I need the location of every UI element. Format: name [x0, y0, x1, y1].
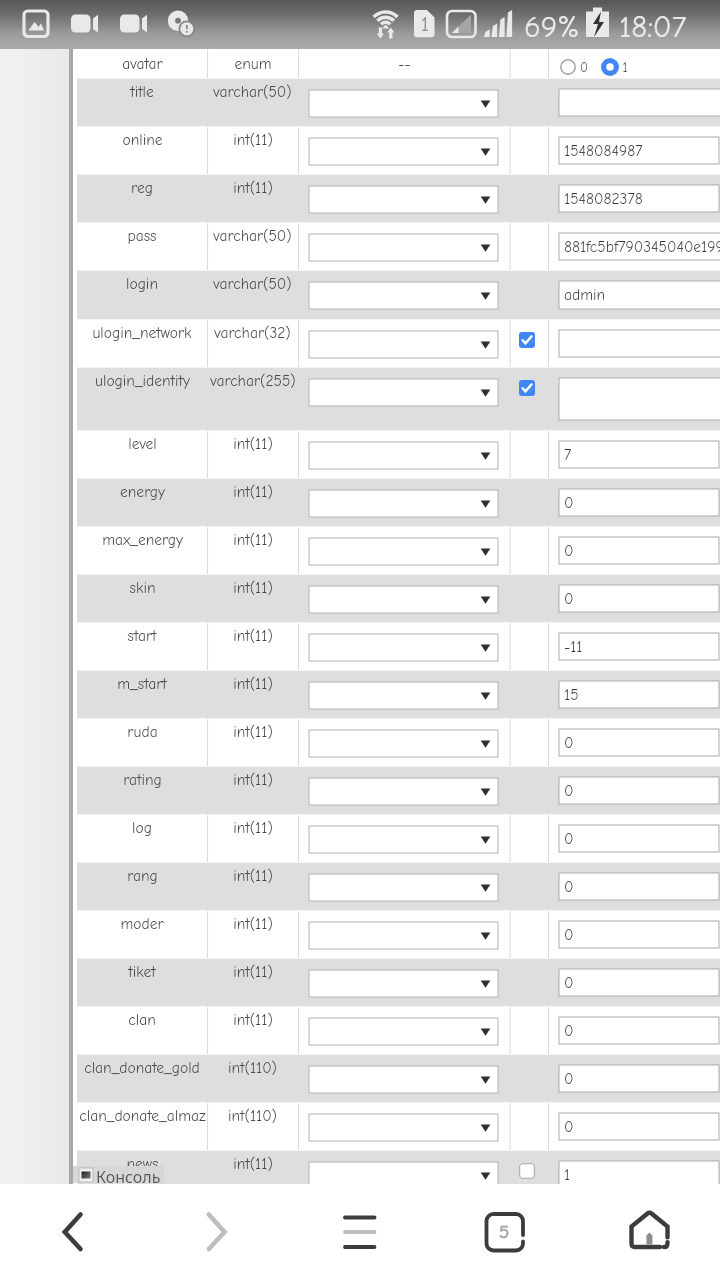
button[interactable]: Value [559, 825, 719, 852]
staticText: 18:07 [619, 9, 687, 45]
staticText: reg [131, 179, 153, 197]
button[interactable]: Value [559, 489, 719, 516]
staticText: 0 [564, 1118, 574, 1136]
staticText: int(110) [228, 1107, 277, 1125]
staticText: 0 [564, 494, 574, 512]
staticText: int(11) [233, 915, 273, 933]
staticText: admin [564, 286, 606, 304]
staticText: skin [129, 579, 156, 597]
button[interactable]: Select function [309, 922, 498, 949]
staticText: clan [128, 1011, 156, 1029]
button[interactable]: Back [36, 1196, 108, 1268]
staticText: varchar(32) [214, 324, 291, 342]
button[interactable]: Set NULL [519, 380, 535, 396]
staticText: rang [127, 867, 158, 885]
button[interactable]: Value [559, 729, 719, 756]
button[interactable]: Select function [309, 90, 498, 117]
button[interactable]: Value [559, 633, 719, 660]
staticText: start [127, 627, 157, 645]
staticText: int(110) [228, 1059, 277, 1077]
staticText: 0 [564, 926, 574, 944]
staticText: 1 [622, 60, 628, 75]
button[interactable]: Value [559, 1065, 719, 1092]
button[interactable]: Select function [309, 234, 498, 261]
button[interactable]: Value [559, 441, 719, 468]
button[interactable]: Value [559, 185, 719, 212]
staticText: 0 [564, 830, 574, 848]
button[interactable]: Value [559, 281, 720, 309]
staticText: 0 [564, 1022, 574, 1040]
button[interactable]: Value [559, 378, 720, 420]
button[interactable]: Value [559, 1161, 719, 1188]
staticText: -11 [564, 638, 583, 656]
staticText: int(11) [233, 483, 273, 501]
button[interactable]: Value [559, 681, 719, 708]
button[interactable]: Forward [180, 1196, 252, 1268]
button[interactable]: Select function [309, 730, 498, 757]
staticText: 0 [564, 590, 574, 608]
staticText: 0 [580, 60, 588, 75]
staticText: 69% [524, 9, 580, 45]
staticText: pass [127, 227, 157, 245]
staticText: varchar(50) [213, 227, 292, 245]
button[interactable]: Value [559, 330, 720, 357]
staticText: 0 [564, 878, 574, 896]
button[interactable]: Value [559, 1113, 719, 1140]
button[interactable]: Консоль [73, 1166, 164, 1183]
staticText: tiket [128, 963, 156, 981]
button[interactable]: Select function [309, 379, 498, 406]
button[interactable]: Tabs [468, 1196, 540, 1268]
button[interactable]: Value [559, 233, 720, 260]
button[interactable]: Select function [309, 682, 498, 709]
button[interactable]: Home [613, 1196, 685, 1268]
staticText: 0 [564, 542, 574, 560]
staticText: ulogin_identity [95, 372, 190, 390]
button[interactable]: Value [559, 873, 719, 900]
staticText: 15 [564, 686, 579, 704]
staticText: Консоль [96, 1166, 161, 1183]
staticText: m_start [117, 675, 167, 693]
button[interactable]: Value [559, 137, 719, 164]
staticText: 0 [564, 734, 574, 752]
button[interactable]: Value [559, 969, 719, 996]
button[interactable]: Value [559, 1017, 719, 1044]
button[interactable]: Select function [309, 634, 498, 661]
staticText: int(11) [233, 1011, 273, 1029]
button[interactable]: Select function [309, 442, 498, 469]
staticText: ruda [127, 723, 158, 741]
button[interactable]: Select function [309, 1066, 498, 1093]
button[interactable]: Select function [309, 778, 498, 805]
staticText: login [126, 275, 158, 293]
button[interactable]: Select function [309, 186, 498, 213]
button[interactable]: Select function [309, 538, 498, 565]
staticText: ulogin_network [92, 324, 192, 342]
staticText: int(11) [233, 723, 273, 741]
staticText: 1 [421, 13, 429, 36]
button[interactable]: Select function [309, 331, 498, 358]
button[interactable]: Select function [309, 1018, 498, 1045]
staticText: avatar [122, 55, 163, 73]
button[interactable]: Option 0 [556, 55, 580, 79]
button[interactable]: Select function [309, 826, 498, 853]
button[interactable]: Select function [309, 1114, 498, 1141]
staticText: clan_donate_almaz [79, 1107, 206, 1125]
button[interactable]: Value [559, 777, 719, 804]
button[interactable]: Select function [309, 970, 498, 997]
button[interactable]: Option 1 [598, 55, 622, 79]
button[interactable]: Set NULL [519, 332, 535, 348]
button[interactable]: Value [559, 585, 719, 612]
button[interactable]: Select function [309, 282, 498, 309]
staticText: moder [120, 915, 164, 933]
button[interactable]: Select function [309, 586, 498, 613]
staticText: varchar(50) [213, 275, 292, 293]
button[interactable]: Select function [309, 874, 498, 901]
button[interactable]: Set NULL [519, 1163, 535, 1179]
button[interactable]: Select function [309, 138, 498, 165]
button[interactable]: Value [559, 537, 719, 564]
staticText: varchar(255) [210, 372, 296, 390]
button[interactable]: Select function [309, 490, 498, 517]
button[interactable]: Value [559, 89, 720, 116]
button[interactable]: Select function [309, 1162, 498, 1189]
button[interactable]: Menu [324, 1196, 396, 1268]
button[interactable]: Value [559, 921, 719, 948]
